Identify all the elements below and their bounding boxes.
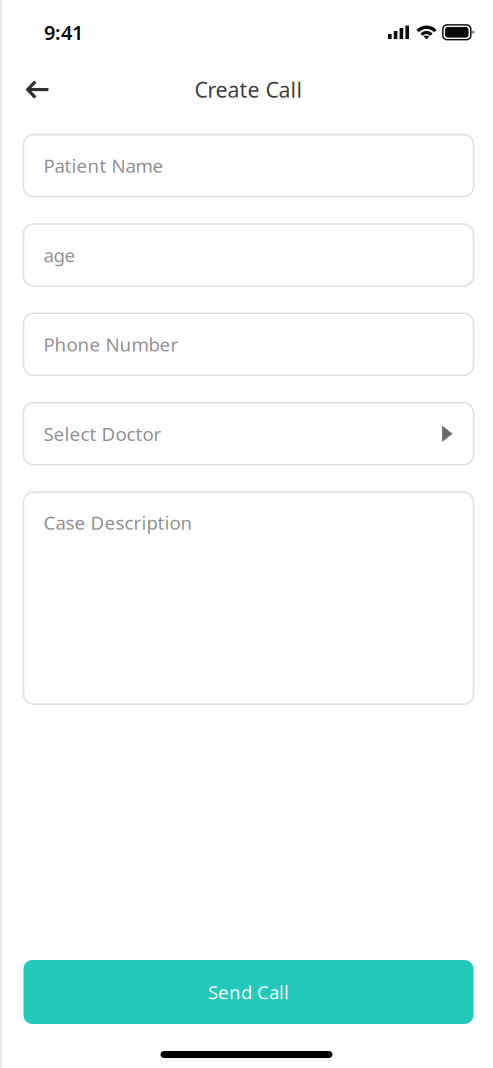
staticText: Phone Number <box>43 332 178 357</box>
staticText: Select Doctor <box>43 421 161 446</box>
staticText: age <box>43 243 75 267</box>
staticText: Create Call <box>194 75 302 104</box>
button[interactable]: Select Doctor <box>23 403 473 465</box>
staticText: Case Description <box>43 510 192 535</box>
button[interactable]: Phone Number <box>23 313 473 375</box>
button[interactable]: age <box>23 224 473 286</box>
staticText: Patient Name <box>43 153 163 178</box>
staticText: 9:41 <box>44 19 83 46</box>
button[interactable]: Send Call <box>23 960 473 1024</box>
staticText: Send Call <box>208 980 289 1004</box>
button[interactable]: Case Description <box>23 492 473 704</box>
button[interactable]: Back <box>2 74 61 106</box>
button[interactable]: Patient Name <box>23 135 473 197</box>
